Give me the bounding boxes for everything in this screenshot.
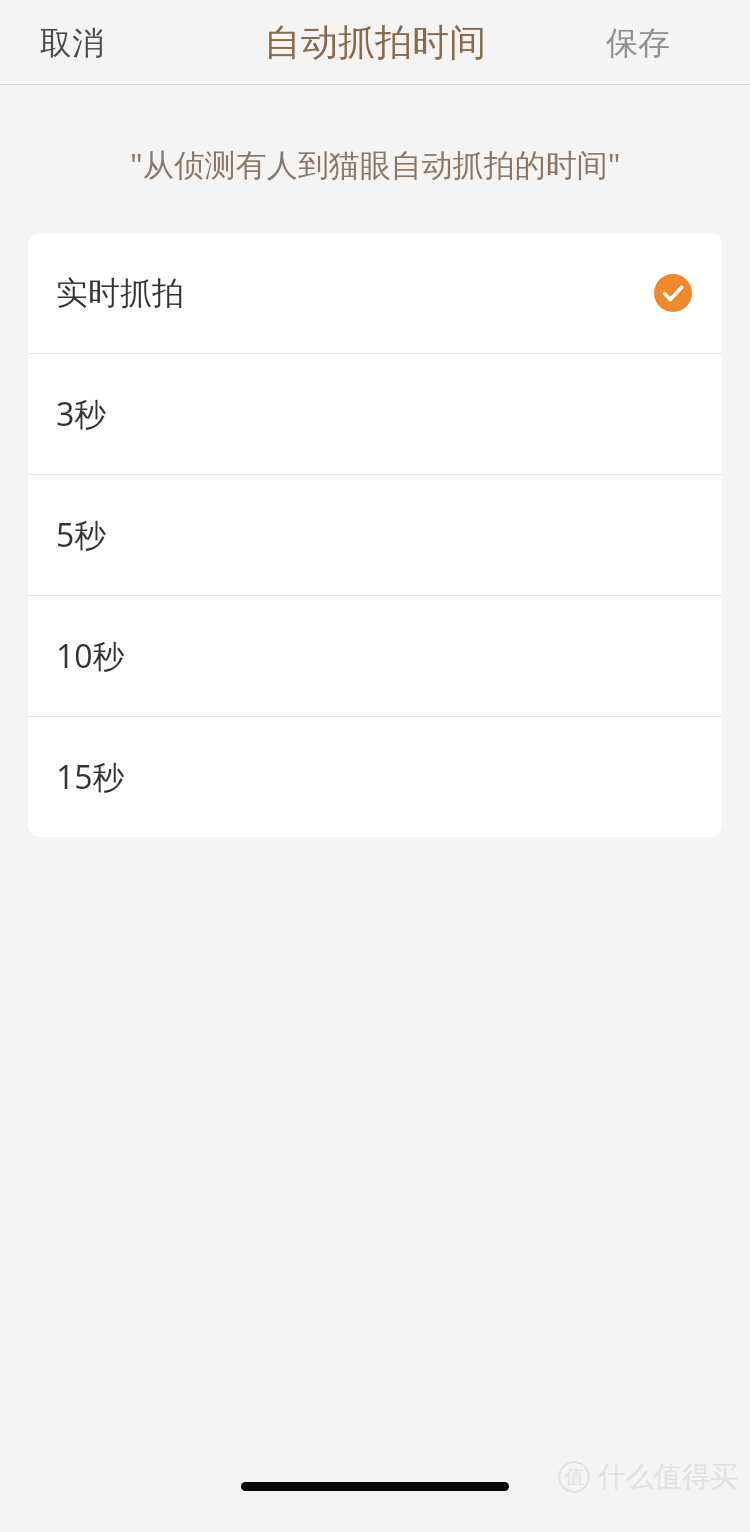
staticText: 实时抓拍 bbox=[56, 273, 184, 313]
button[interactable]: 10秒 bbox=[28, 596, 722, 716]
button[interactable]: 15秒 bbox=[28, 717, 722, 837]
other: Selected bbox=[654, 274, 692, 312]
staticText: 15秒 bbox=[56, 755, 125, 799]
staticText: "从侦测有人到猫眼自动抓拍的时间" bbox=[130, 143, 621, 185]
staticText: 3秒 bbox=[56, 392, 107, 436]
staticText: 什么值得买 bbox=[598, 1459, 738, 1494]
button[interactable]: 3秒 bbox=[28, 354, 722, 474]
staticText: 5秒 bbox=[56, 513, 107, 557]
button[interactable]: 实时抓拍 bbox=[28, 233, 722, 353]
staticText: 10秒 bbox=[56, 634, 125, 678]
staticText: 值 bbox=[565, 1465, 584, 1489]
staticText: 保存 bbox=[606, 23, 670, 63]
button[interactable]: 5秒 bbox=[28, 475, 722, 595]
button[interactable]: 保存 bbox=[606, 23, 670, 63]
button[interactable]: 取消 bbox=[40, 23, 104, 63]
staticText: 自动抓拍时间 bbox=[264, 19, 486, 66]
staticText: 取消 bbox=[40, 23, 104, 63]
